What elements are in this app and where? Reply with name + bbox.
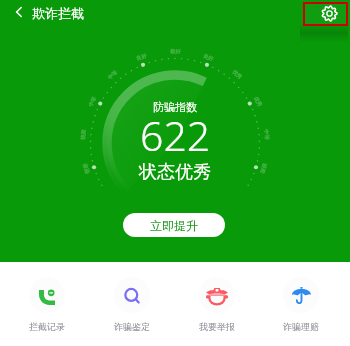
- button[interactable]: 拦截记录: [4, 262, 89, 332]
- button[interactable]: 立即提升: [123, 213, 225, 237]
- staticText: 较差: [80, 129, 87, 140]
- staticText: 诈骗理赔: [283, 321, 319, 332]
- staticText: 较差: [258, 162, 268, 175]
- button[interactable]: 诈骗鉴定: [89, 262, 174, 332]
- staticText: 诈骗鉴定: [114, 321, 150, 332]
- staticText: 较差: [81, 162, 91, 175]
- staticText: 拦截记录: [29, 321, 65, 332]
- staticText: 中等: [262, 129, 270, 140]
- button[interactable]: 我要举报: [174, 262, 259, 332]
- staticText: 良好: [202, 52, 215, 63]
- button[interactable]: Settings: [305, 4, 346, 24]
- button[interactable]: 诈骗理赔: [259, 262, 343, 332]
- staticText: 良好: [135, 52, 148, 62]
- staticText: 立即提升: [150, 218, 198, 233]
- staticText: 优秀: [231, 68, 243, 81]
- staticText: 我要举报: [199, 321, 235, 332]
- staticText: 欺诈拦截: [32, 5, 84, 21]
- staticText: 622: [140, 107, 211, 163]
- button[interactable]: Back: [7, 0, 31, 24]
- staticText: 中等: [106, 69, 119, 81]
- staticText: 中等: [87, 95, 98, 108]
- staticText: 防骗指数: [153, 100, 197, 114]
- staticText: 极好: [170, 48, 181, 55]
- staticText: 优秀: [252, 95, 263, 108]
- staticText: 状态优秀: [139, 161, 211, 184]
